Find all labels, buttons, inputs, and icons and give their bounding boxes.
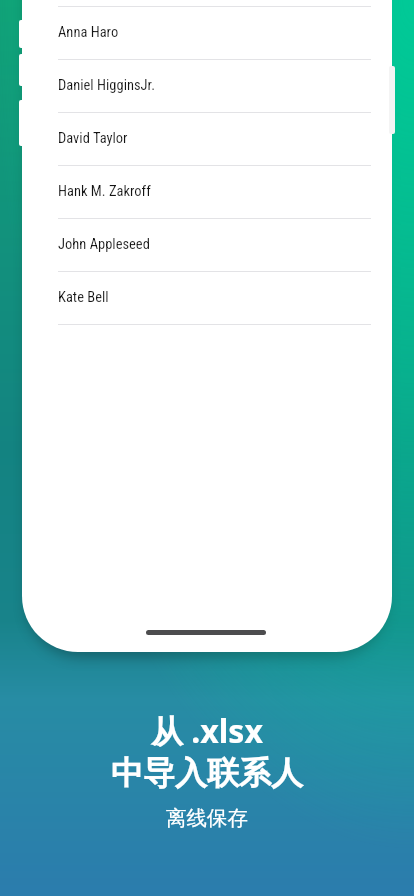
button[interactable]: David Taylor [58, 113, 371, 165]
staticText: Anna Haro [58, 24, 119, 41]
staticText: 离线保存 [166, 805, 248, 831]
button[interactable]: John Appleseed [58, 219, 371, 271]
staticText: Kate Bell [58, 289, 109, 306]
staticText: John Appleseed [58, 236, 150, 253]
button[interactable]: Kate Bell [58, 272, 371, 324]
staticText: Daniel HigginsJr. [58, 77, 155, 94]
staticText: 中导入联系人 [111, 753, 303, 793]
staticText: David Taylor [58, 130, 128, 147]
button[interactable]: Anna Haro [58, 7, 371, 59]
button[interactable]: Hank M. Zakroff [58, 166, 371, 218]
staticText: 从 .xlsx [151, 709, 263, 753]
button[interactable]: Daniel HigginsJr. [58, 60, 371, 112]
staticText: Hank M. Zakroff [58, 183, 151, 200]
